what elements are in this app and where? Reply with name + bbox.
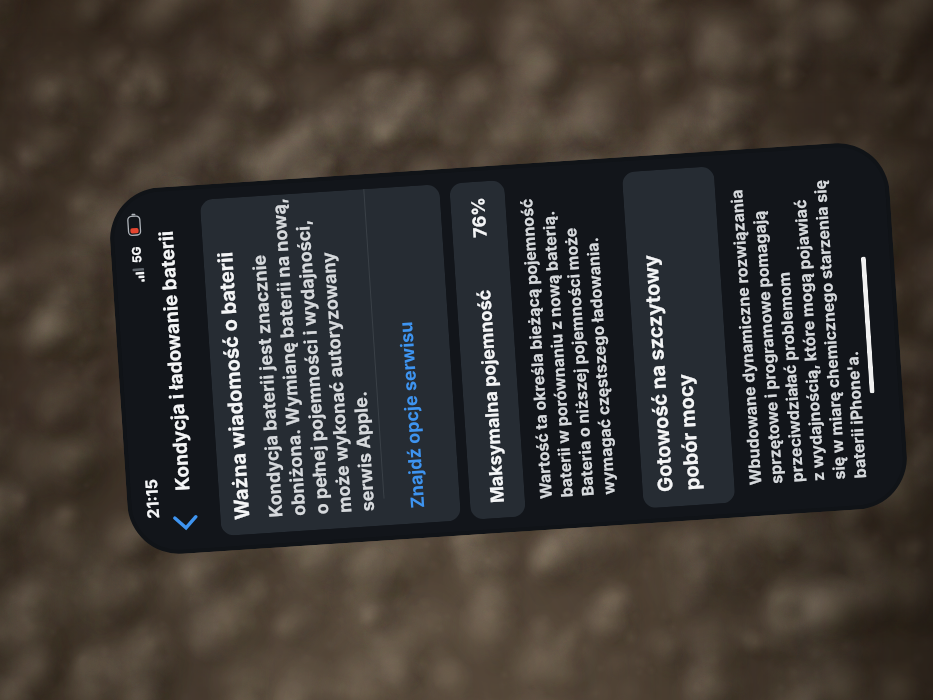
staticText: Wartość ta określa bieżącą pojemność bat… [514, 165, 619, 499]
staticText: 76% [467, 196, 492, 238]
button[interactable]: Gotowość na szczytowy pobór mocy [622, 166, 735, 508]
button[interactable]: Maksymalna pojemność [449, 180, 526, 520]
staticText: Gotowość na szczytowy pobór mocy [637, 240, 705, 493]
staticText: 21:15 [141, 478, 162, 519]
button[interactable]: Ważna wiadomość o baterii [200, 184, 461, 536]
staticText: Ważna wiadomość o baterii [213, 250, 255, 520]
staticText: Znajdź opcje serwisu [395, 321, 429, 509]
staticText: Kondycja i ładowanie baterii [155, 229, 195, 491]
staticText: Maksymalna pojemność [473, 289, 509, 504]
staticText: Kondycja baterii jest znacznie obniżona.… [244, 189, 379, 518]
button[interactable]: Znajdź opcje serwisu [364, 184, 461, 525]
button[interactable]: Wstecz [170, 504, 202, 542]
staticText: 5G [128, 246, 145, 263]
staticText: Wbudowane dynamiczne rozwiązania sprzęto… [724, 148, 870, 486]
